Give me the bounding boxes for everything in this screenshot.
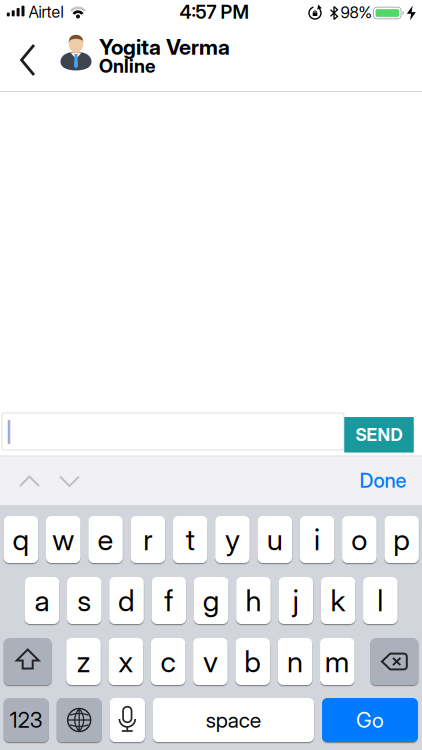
button[interactable]: 123 [4, 698, 49, 742]
staticText: x [118, 644, 133, 679]
staticText: o [351, 522, 367, 557]
button[interactable]: u [257, 516, 292, 563]
button[interactable]: SEND [344, 417, 414, 453]
staticText: 98% [340, 3, 372, 22]
button[interactable]: m [320, 638, 354, 685]
staticText: r [143, 522, 152, 557]
staticText: 123 [10, 707, 43, 733]
staticText: y [225, 522, 240, 557]
button[interactable]: Back [0, 0, 422, 750]
staticText: e [97, 522, 113, 557]
staticText: p [393, 522, 410, 557]
staticText: f [164, 583, 173, 618]
button[interactable]: Next keyboard [57, 698, 102, 742]
staticText: j [293, 583, 299, 618]
button[interactable]: g [194, 577, 228, 624]
staticText: c [161, 644, 176, 679]
staticText: q [12, 522, 29, 557]
staticText: 4:57 PM [179, 1, 248, 23]
button[interactable]: h [236, 577, 271, 624]
staticText: Yogita Verma [99, 34, 230, 60]
staticText: z [76, 644, 90, 679]
staticText: n [287, 644, 303, 679]
button[interactable]: f [152, 577, 186, 624]
button[interactable]: w [46, 516, 80, 563]
staticText: h [245, 583, 261, 618]
button[interactable]: z [66, 638, 101, 685]
button[interactable]: k [321, 577, 355, 624]
staticText: Airtel [28, 3, 63, 21]
button[interactable]: Shift [4, 638, 52, 685]
staticText: Online [99, 55, 155, 77]
button[interactable]: e [88, 516, 123, 563]
staticText: SEND [355, 425, 402, 445]
button[interactable]: n [278, 638, 312, 685]
button[interactable]: x [108, 638, 143, 685]
button[interactable]: Dictate [110, 698, 145, 742]
staticText: d [118, 583, 135, 618]
staticText: a [34, 583, 49, 618]
button[interactable]: l [363, 577, 398, 624]
staticText: w [52, 522, 74, 557]
staticText: m [325, 644, 350, 679]
button[interactable]: Delete [370, 638, 418, 685]
button[interactable]: space [153, 698, 314, 742]
button[interactable]: t [173, 516, 207, 563]
button[interactable]: s [67, 577, 101, 624]
staticText: t [186, 522, 195, 557]
button[interactable]: j [278, 577, 313, 624]
button[interactable]: Next field [0, 0, 422, 750]
button[interactable]: Done [359, 469, 406, 492]
staticText: k [330, 583, 345, 618]
staticText: Go [356, 707, 384, 733]
button[interactable]: i [300, 516, 334, 563]
button[interactable]: o [342, 516, 377, 563]
staticText: b [244, 644, 261, 679]
button[interactable]: v [193, 638, 228, 685]
staticText: g [203, 583, 220, 618]
button[interactable]: c [151, 638, 185, 685]
staticText: v [203, 644, 218, 679]
button[interactable]: p [384, 516, 419, 563]
button[interactable]: a [25, 577, 59, 624]
button[interactable]: Previous field [0, 0, 422, 750]
staticText: Done [359, 469, 406, 492]
button[interactable]: b [235, 638, 270, 685]
staticText: u [267, 522, 283, 557]
staticText: s [77, 583, 91, 618]
button[interactable]: r [131, 516, 165, 563]
button[interactable]: d [109, 577, 144, 624]
button[interactable]: y [215, 516, 250, 563]
staticText: space [206, 707, 261, 733]
button[interactable]: q [4, 516, 38, 563]
button[interactable]: Go [322, 698, 418, 742]
staticText: i [314, 522, 320, 557]
staticText: l [377, 583, 383, 618]
